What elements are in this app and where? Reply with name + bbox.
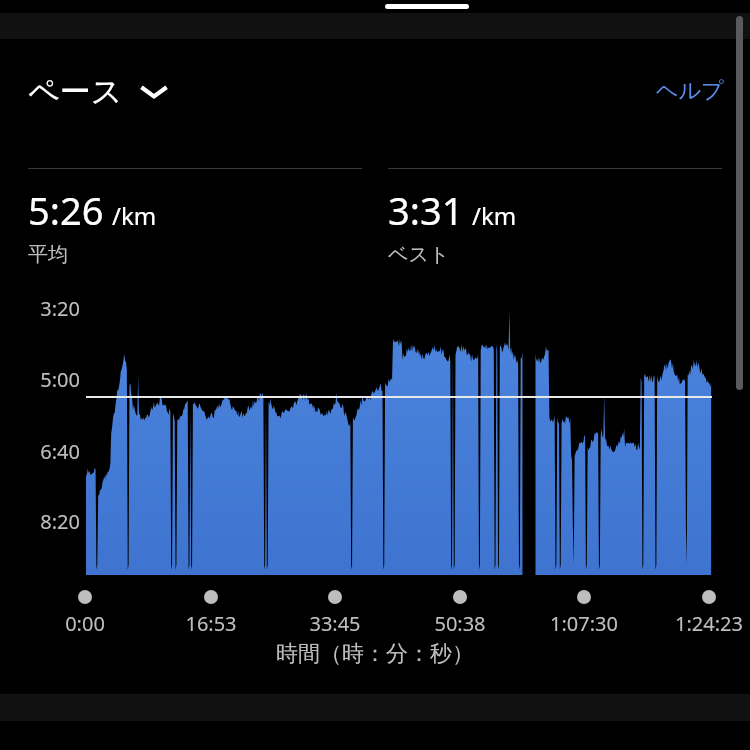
button[interactable]: 3:31 bbox=[388, 168, 722, 267]
button[interactable]: ペース bbox=[22, 68, 177, 115]
staticText: 3:31 bbox=[388, 184, 464, 236]
button[interactable]: ヘルプ bbox=[648, 71, 732, 111]
staticText: 5:00 bbox=[28, 366, 80, 393]
staticText: /km bbox=[472, 199, 517, 232]
staticText: 1:24:23 bbox=[649, 610, 750, 637]
staticText: ヘルプ bbox=[656, 77, 724, 105]
staticText: ベスト bbox=[388, 242, 450, 267]
staticText: 8:20 bbox=[28, 508, 80, 535]
staticText: /km bbox=[112, 199, 157, 232]
staticText: 平均 bbox=[28, 242, 68, 267]
staticText: 時間（時：分：秒） bbox=[0, 640, 750, 668]
staticText: 1:07:30 bbox=[524, 610, 644, 637]
staticText: 33:45 bbox=[275, 610, 395, 637]
staticText: 0:00 bbox=[25, 610, 145, 637]
staticText: 6:40 bbox=[28, 438, 80, 465]
button[interactable]: 5:26 bbox=[28, 168, 362, 267]
staticText: 16:53 bbox=[151, 610, 271, 637]
staticText: 5:26 bbox=[28, 184, 104, 236]
staticText: 3:20 bbox=[28, 295, 80, 322]
staticText: 50:38 bbox=[400, 610, 520, 637]
staticText: ペース bbox=[28, 72, 123, 111]
